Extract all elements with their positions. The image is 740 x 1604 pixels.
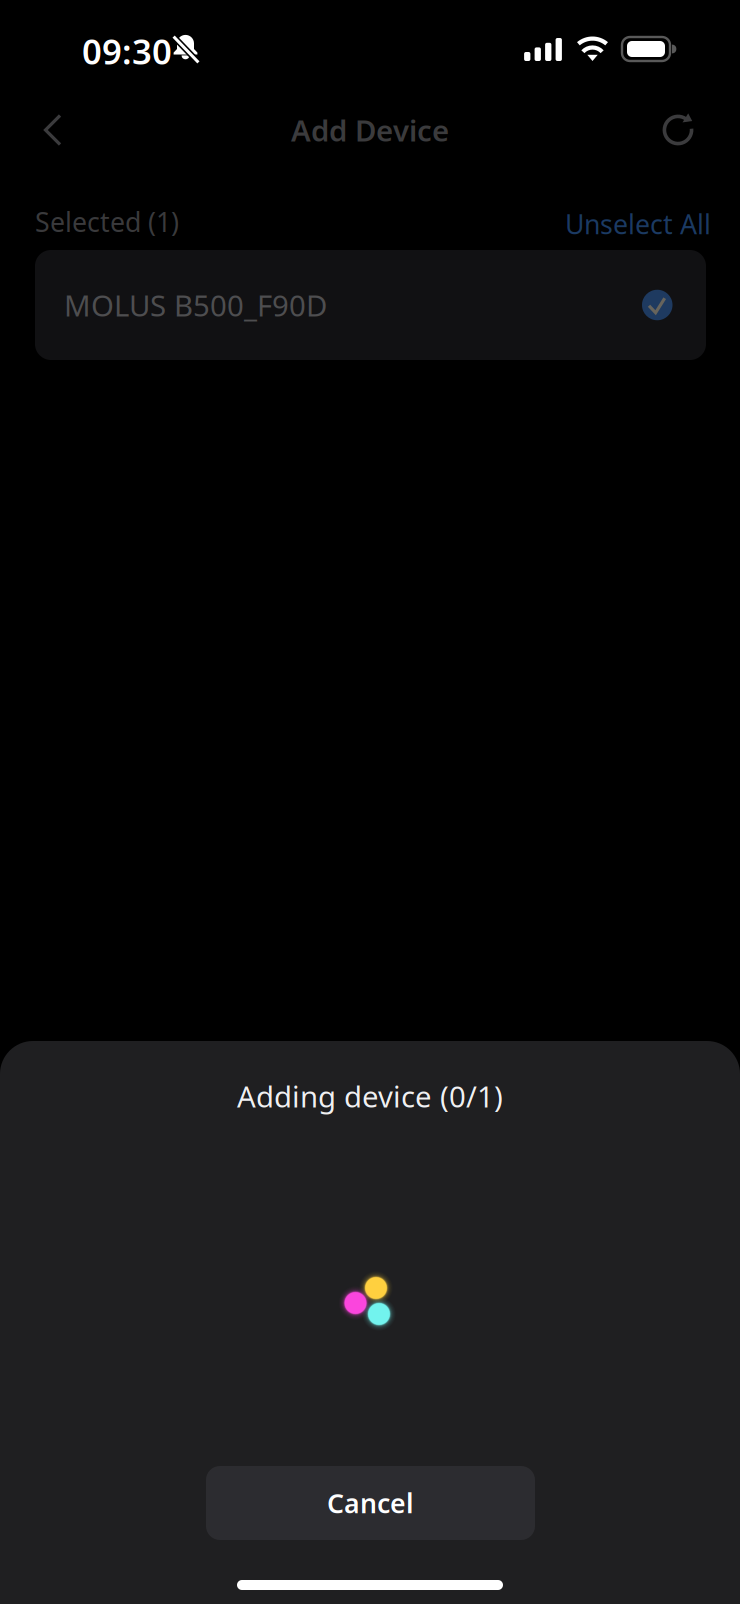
staticText: 09:30 (82, 28, 172, 74)
staticText: Selected (1) (35, 204, 179, 239)
staticText: Cancel (327, 1485, 414, 1521)
button[interactable]: Back (21, 98, 85, 162)
button[interactable]: Unselect All (557, 200, 719, 248)
button[interactable]: Refresh (646, 98, 710, 162)
staticText: Add Device (291, 110, 449, 149)
staticText: MOLUS B500_F90D (64, 285, 327, 324)
staticText: Adding device (0/1) (237, 1076, 503, 1115)
button[interactable]: Cancel (206, 1466, 535, 1540)
button[interactable]: MOLUS B500_F90D (35, 250, 706, 360)
staticText: Unselect All (565, 206, 711, 242)
